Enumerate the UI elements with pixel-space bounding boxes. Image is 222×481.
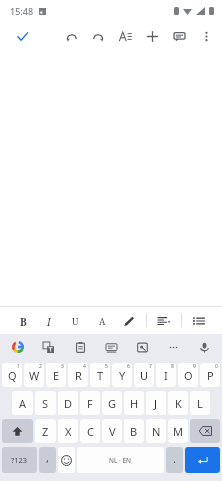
button[interactable]: Screenshot (133, 336, 151, 358)
staticText: A (19, 396, 27, 411)
button[interactable]: L (190, 391, 210, 415)
button[interactable]: Backspace (190, 419, 220, 443)
button[interactable]: E (46, 363, 66, 387)
button[interactable]: Bold (13, 309, 33, 333)
button[interactable]: Enter (185, 447, 220, 473)
staticText: B (20, 315, 27, 327)
staticText: U (72, 315, 79, 327)
staticText: E (53, 368, 60, 383)
button[interactable]: Clipboard (71, 336, 89, 358)
staticText: 2 (39, 363, 42, 370)
staticText: 1 (17, 363, 20, 370)
button[interactable]: Translate (39, 336, 57, 358)
button[interactable]: C (80, 419, 100, 443)
staticText: T (97, 368, 104, 383)
button[interactable]: U (134, 363, 154, 387)
button[interactable]: Formatting (112, 22, 139, 50)
button[interactable]: K (168, 391, 188, 415)
button[interactable]: S (35, 391, 56, 415)
button[interactable]: Underline (65, 309, 85, 333)
staticText: R (75, 368, 82, 383)
button[interactable]: More (164, 336, 182, 358)
staticText: ?123 (11, 455, 28, 465)
button[interactable]: T (90, 363, 110, 387)
button[interactable]: Text color (92, 309, 112, 333)
staticText: S (42, 396, 49, 411)
button[interactable]: Y (112, 363, 132, 387)
staticText: 6 (127, 363, 130, 370)
staticText: M (173, 424, 183, 439)
button[interactable]: B (124, 419, 144, 443)
button[interactable]: Redo (85, 22, 112, 50)
button[interactable]: V (102, 419, 122, 443)
button[interactable]: List (189, 309, 209, 333)
button[interactable]: Period (166, 447, 183, 473)
staticText: X (65, 424, 72, 439)
staticText: NL · EN (109, 456, 132, 465)
staticText: V (109, 424, 116, 439)
staticText: I (164, 368, 168, 383)
button[interactable]: Shift (2, 419, 33, 443)
staticText: 9 (193, 363, 196, 370)
staticText: F (87, 396, 93, 411)
staticText: 4 (83, 363, 86, 370)
staticText: C (87, 424, 94, 439)
button[interactable]: W (24, 363, 44, 387)
button[interactable]: G (102, 391, 122, 415)
button[interactable]: I (156, 363, 176, 387)
staticText: W (29, 368, 40, 383)
staticText: . (173, 451, 176, 466)
staticText: Q (8, 368, 17, 383)
button[interactable]: Stickers (102, 336, 120, 358)
button[interactable]: More options (193, 22, 220, 50)
button[interactable]: X (58, 419, 78, 443)
staticText: 7 (149, 363, 152, 370)
button[interactable]: NL · EN (77, 447, 164, 473)
button[interactable]: H (124, 391, 144, 415)
button[interactable]: ?123 (2, 447, 37, 473)
button[interactable]: Italic (39, 309, 59, 333)
button[interactable]: Q (2, 363, 22, 387)
staticText: B (130, 424, 138, 439)
staticText: A (99, 315, 106, 327)
button[interactable]: O (178, 363, 198, 387)
staticText: 5 (105, 363, 108, 370)
button[interactable]: Comment (166, 22, 193, 50)
staticText: O (184, 368, 193, 383)
staticText: G (108, 396, 117, 411)
button[interactable]: Voice input (195, 336, 213, 358)
button[interactable]: Undo (58, 22, 85, 50)
staticText: N (152, 424, 161, 439)
button[interactable]: Alignment (154, 309, 174, 333)
button[interactable]: N (146, 419, 166, 443)
button[interactable]: Google (10, 339, 25, 354)
staticText: P (207, 368, 214, 383)
button[interactable]: Done (0, 22, 44, 50)
staticText: H (130, 396, 139, 411)
button[interactable]: F (80, 391, 100, 415)
staticText: I (47, 315, 51, 327)
staticText: L (197, 396, 203, 411)
staticText: U (140, 368, 149, 383)
staticText: 15:48 (10, 5, 34, 17)
button[interactable]: P (200, 363, 220, 387)
button[interactable]: Highlight (119, 309, 139, 333)
staticText: 3 (61, 363, 64, 370)
staticText: 8 (171, 363, 174, 370)
staticText: Z (42, 424, 49, 439)
button[interactable]: M (168, 419, 188, 443)
staticText: Y (119, 368, 126, 383)
button[interactable]: J (146, 391, 166, 415)
staticText: D (64, 396, 73, 411)
button[interactable]: Comma (39, 447, 56, 473)
staticText: K (175, 396, 182, 411)
staticText: J (154, 396, 158, 411)
staticText: 0 (215, 363, 218, 370)
button[interactable]: R (68, 363, 88, 387)
button[interactable]: A (12, 391, 33, 415)
button[interactable]: Emoji (58, 447, 75, 473)
button[interactable]: D (58, 391, 78, 415)
button[interactable]: Z (35, 419, 56, 443)
staticText: , (46, 450, 49, 465)
button[interactable]: Insert (139, 22, 166, 50)
